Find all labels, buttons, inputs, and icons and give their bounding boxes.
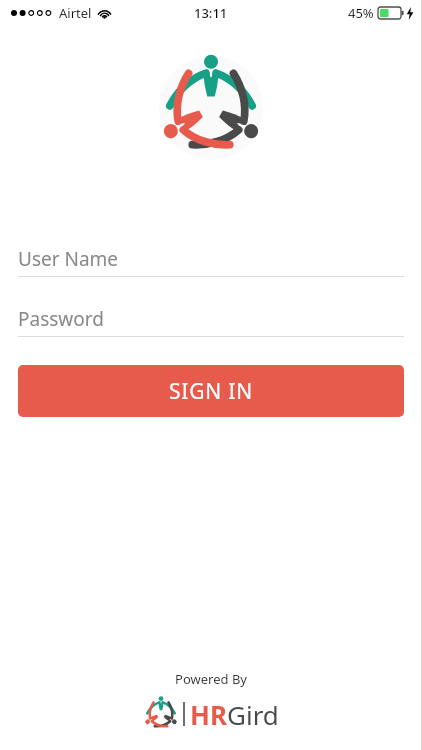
button[interactable]: SIGN IN bbox=[18, 365, 404, 417]
staticText: 13:11 bbox=[194, 4, 228, 22]
staticText: Password bbox=[18, 306, 104, 332]
staticText: Powered By bbox=[175, 670, 247, 688]
staticText: Gird bbox=[227, 697, 279, 732]
staticText: HR bbox=[190, 697, 227, 732]
staticText: User Name bbox=[18, 246, 119, 272]
button[interactable]: User Name bbox=[18, 242, 404, 277]
button[interactable]: Password bbox=[18, 302, 404, 337]
staticText: 45% bbox=[348, 4, 374, 22]
staticText: Airtel bbox=[59, 4, 92, 22]
staticText: SIGN IN bbox=[169, 377, 254, 406]
